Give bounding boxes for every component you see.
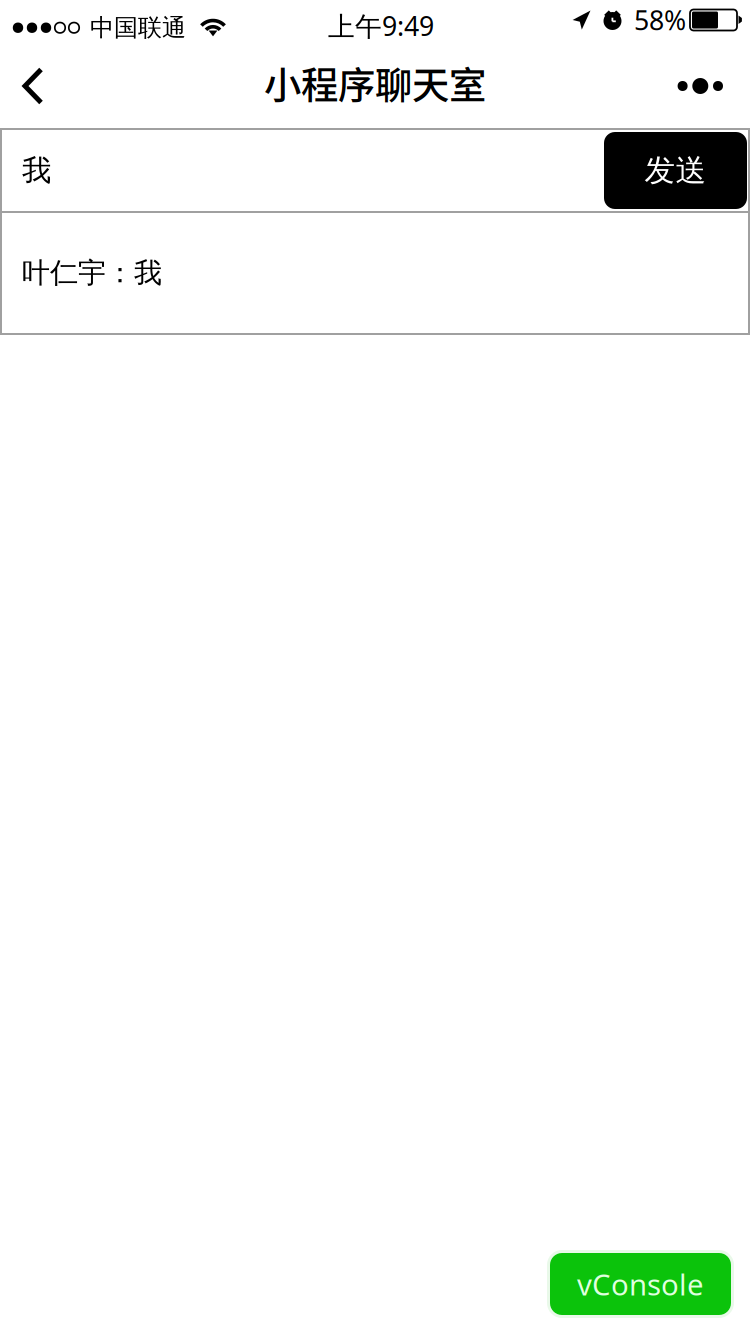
staticText: 我	[22, 152, 51, 188]
button[interactable]: 返回	[1, 44, 65, 128]
staticText: 小程序聊天室	[264, 56, 486, 110]
button[interactable]: 发送	[604, 132, 747, 209]
staticText: 上午9:49	[328, 8, 434, 43]
staticText: vConsole	[577, 1264, 704, 1303]
staticText: 叶仁宇：我	[22, 256, 162, 290]
button[interactable]: vConsole	[547, 1250, 734, 1318]
staticText: 58%	[634, 2, 686, 38]
button[interactable]: 更多	[664, 44, 737, 128]
staticText: 中国联通	[90, 13, 186, 42]
staticText: 发送	[644, 152, 706, 189]
